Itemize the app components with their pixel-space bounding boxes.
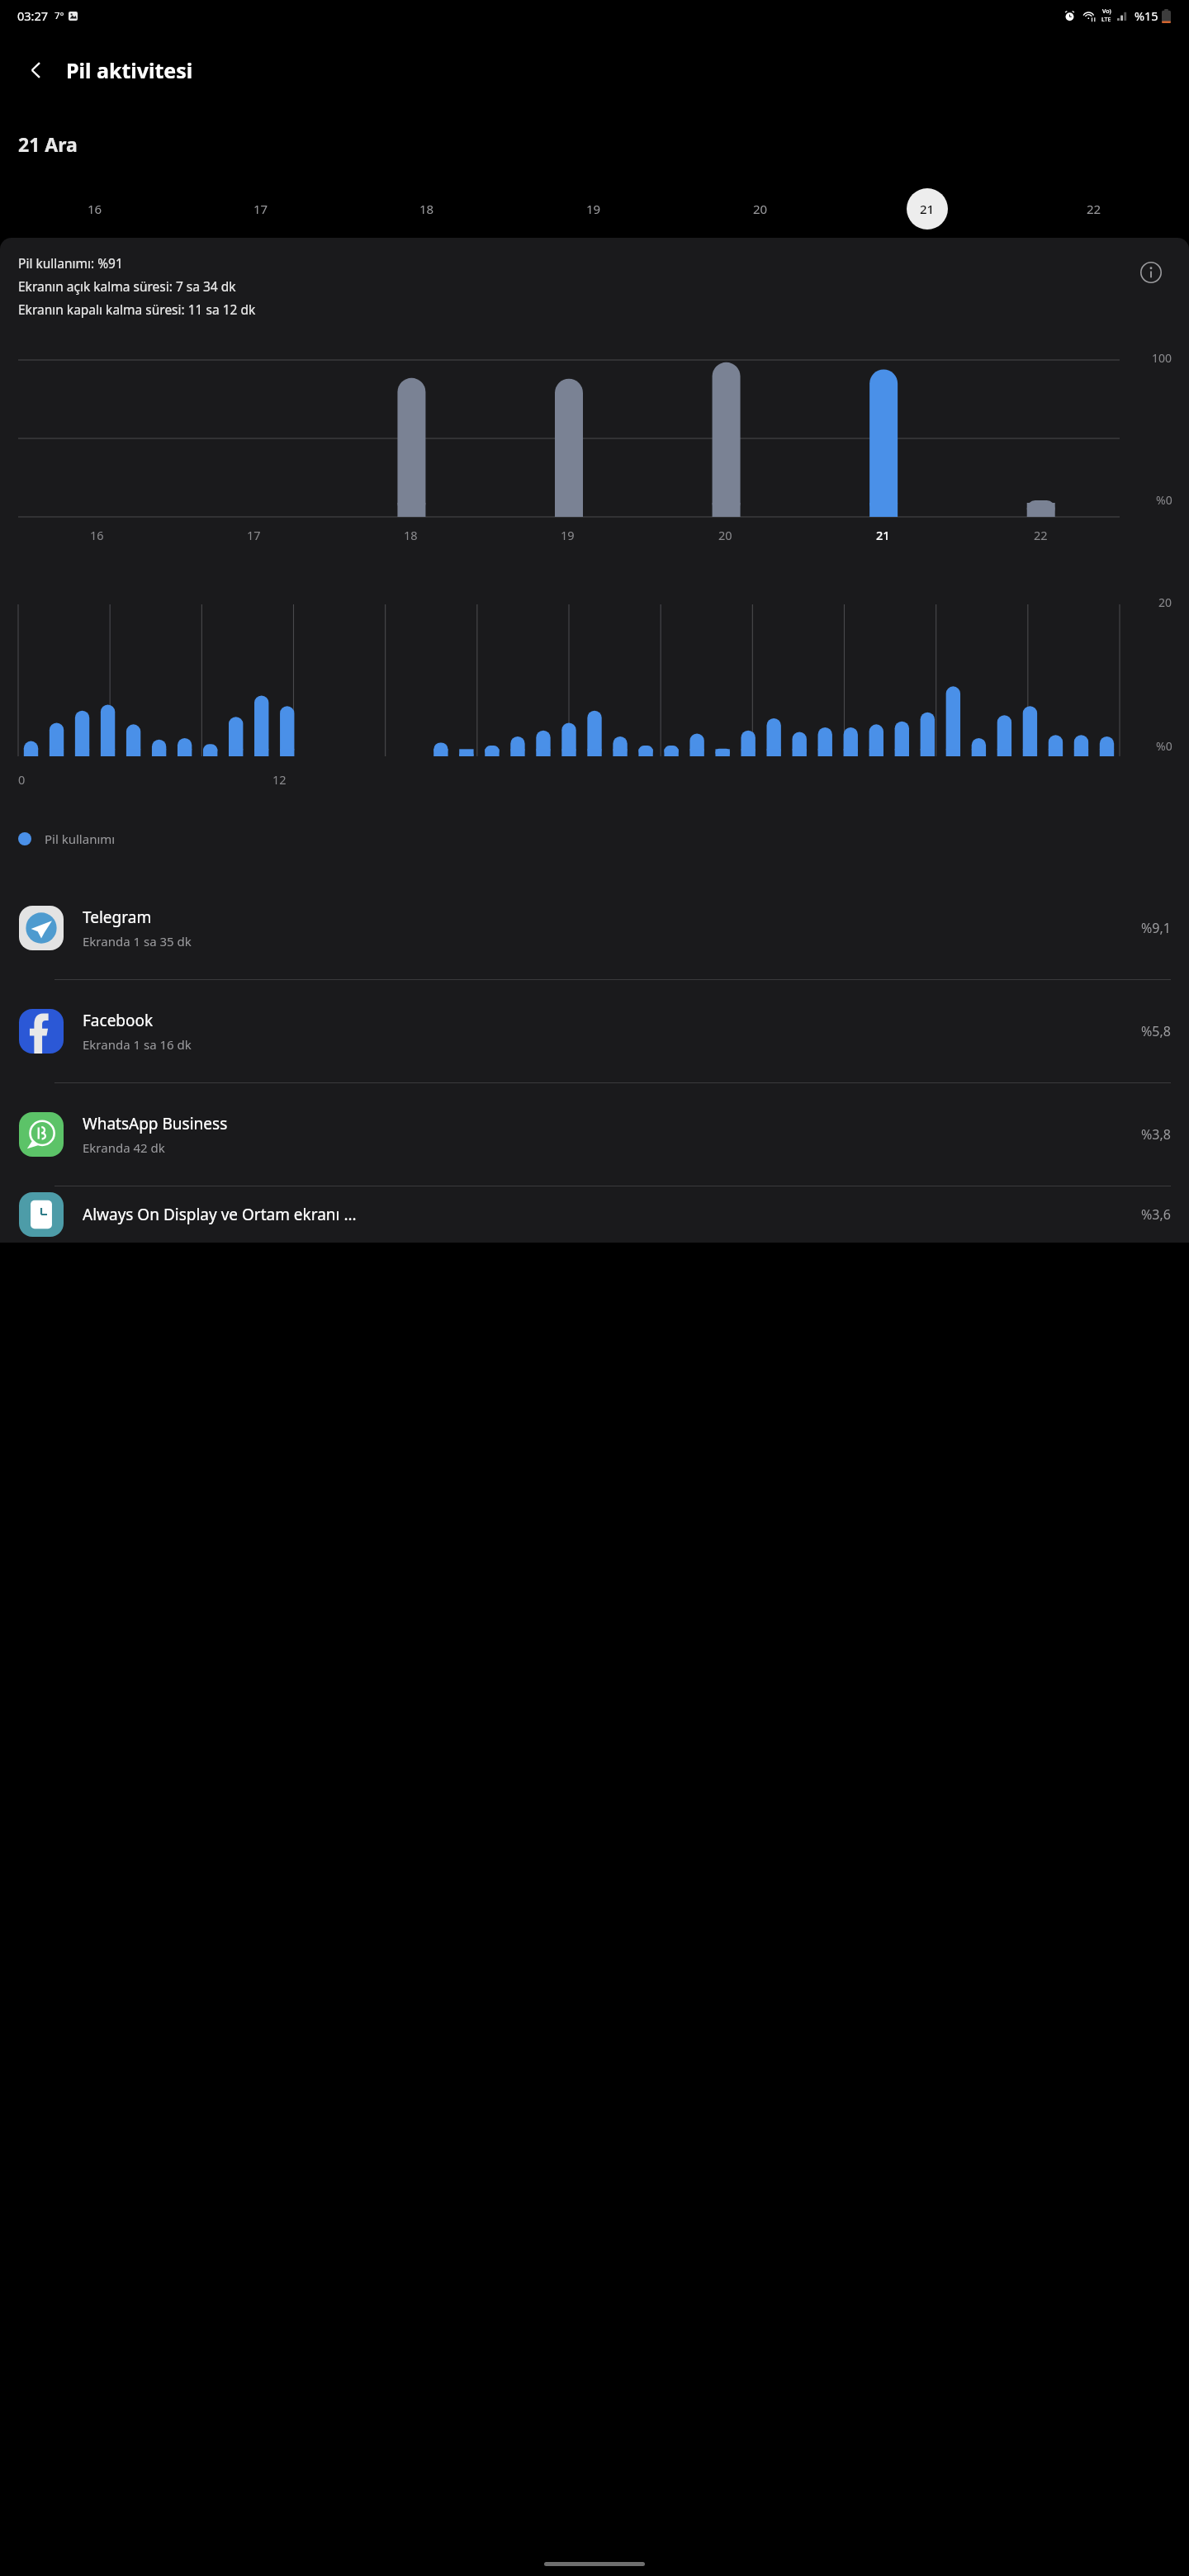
staticText: LTE	[1101, 16, 1111, 24]
staticText: 12	[272, 771, 287, 788]
staticText: Pil aktivitesi	[66, 56, 193, 84]
staticText: 17	[247, 527, 261, 543]
staticText: Facebook	[83, 1010, 154, 1031]
staticText: 7°	[54, 9, 64, 22]
staticText: Telegram	[83, 907, 152, 928]
button[interactable]: Facebook	[0, 980, 1189, 1082]
button[interactable]: 16	[12, 187, 178, 230]
staticText: Ekranda 1 sa 16 dk	[83, 1036, 192, 1053]
button[interactable]: Bilgi	[1131, 253, 1171, 292]
button[interactable]: Always On Display ve Ortam ekranı ...	[0, 1186, 1189, 1243]
button[interactable]: 17	[178, 187, 343, 230]
staticText: 19	[586, 201, 601, 217]
staticText: 17	[253, 201, 268, 217]
staticText: Ekranın açık kalma süresi: 7 sa 34 dk	[18, 277, 236, 295]
staticText: %3,6	[1141, 1205, 1171, 1224]
staticText: 20	[753, 201, 768, 217]
staticText: %3,8	[1141, 1125, 1171, 1144]
button[interactable]: 22	[1011, 187, 1177, 230]
staticText: 21	[920, 201, 935, 217]
staticText: WhatsApp Business	[83, 1113, 228, 1134]
staticText: Pil kullanımı: %91	[18, 254, 123, 272]
staticText: Pil kullanımı	[45, 831, 116, 847]
staticText: 19	[561, 527, 575, 543]
staticText: 22	[1034, 527, 1048, 543]
staticText: %0	[1156, 492, 1172, 508]
button[interactable]: 21	[844, 187, 1011, 230]
staticText: 18	[419, 201, 434, 217]
button[interactable]: WhatsApp Business	[0, 1083, 1189, 1186]
staticText: %9,1	[1141, 919, 1171, 937]
staticText: 16	[88, 201, 102, 217]
button[interactable]: 18	[343, 187, 510, 230]
staticText: 21 Ara	[18, 131, 78, 157]
staticText: 20	[718, 527, 732, 543]
staticText: Ekranda 42 dk	[83, 1139, 165, 1156]
staticText: 21	[876, 527, 890, 543]
button[interactable]: 20	[677, 187, 844, 230]
staticText: Ekranda 1 sa 35 dk	[83, 933, 192, 949]
staticText: %15	[1135, 7, 1158, 24]
staticText: %0	[1156, 738, 1172, 754]
staticText: %5,8	[1141, 1022, 1171, 1040]
button[interactable]: Telegram	[0, 877, 1189, 979]
staticText: 22	[1087, 201, 1101, 217]
staticText: Ekranın kapalı kalma süresi: 11 sa 12 dk	[18, 301, 256, 318]
staticText: Always On Display ve Ortam ekranı ...	[83, 1204, 1135, 1225]
button[interactable]: Back	[15, 49, 58, 92]
staticText: 03:27	[17, 7, 49, 24]
staticText: 16	[90, 527, 104, 543]
staticText: 100	[1152, 350, 1172, 366]
button[interactable]: 19	[510, 187, 677, 230]
staticText: 0	[18, 771, 26, 788]
staticText: 18	[404, 527, 418, 543]
staticText: 20	[1158, 594, 1172, 610]
staticText: Vo)	[1102, 7, 1111, 16]
